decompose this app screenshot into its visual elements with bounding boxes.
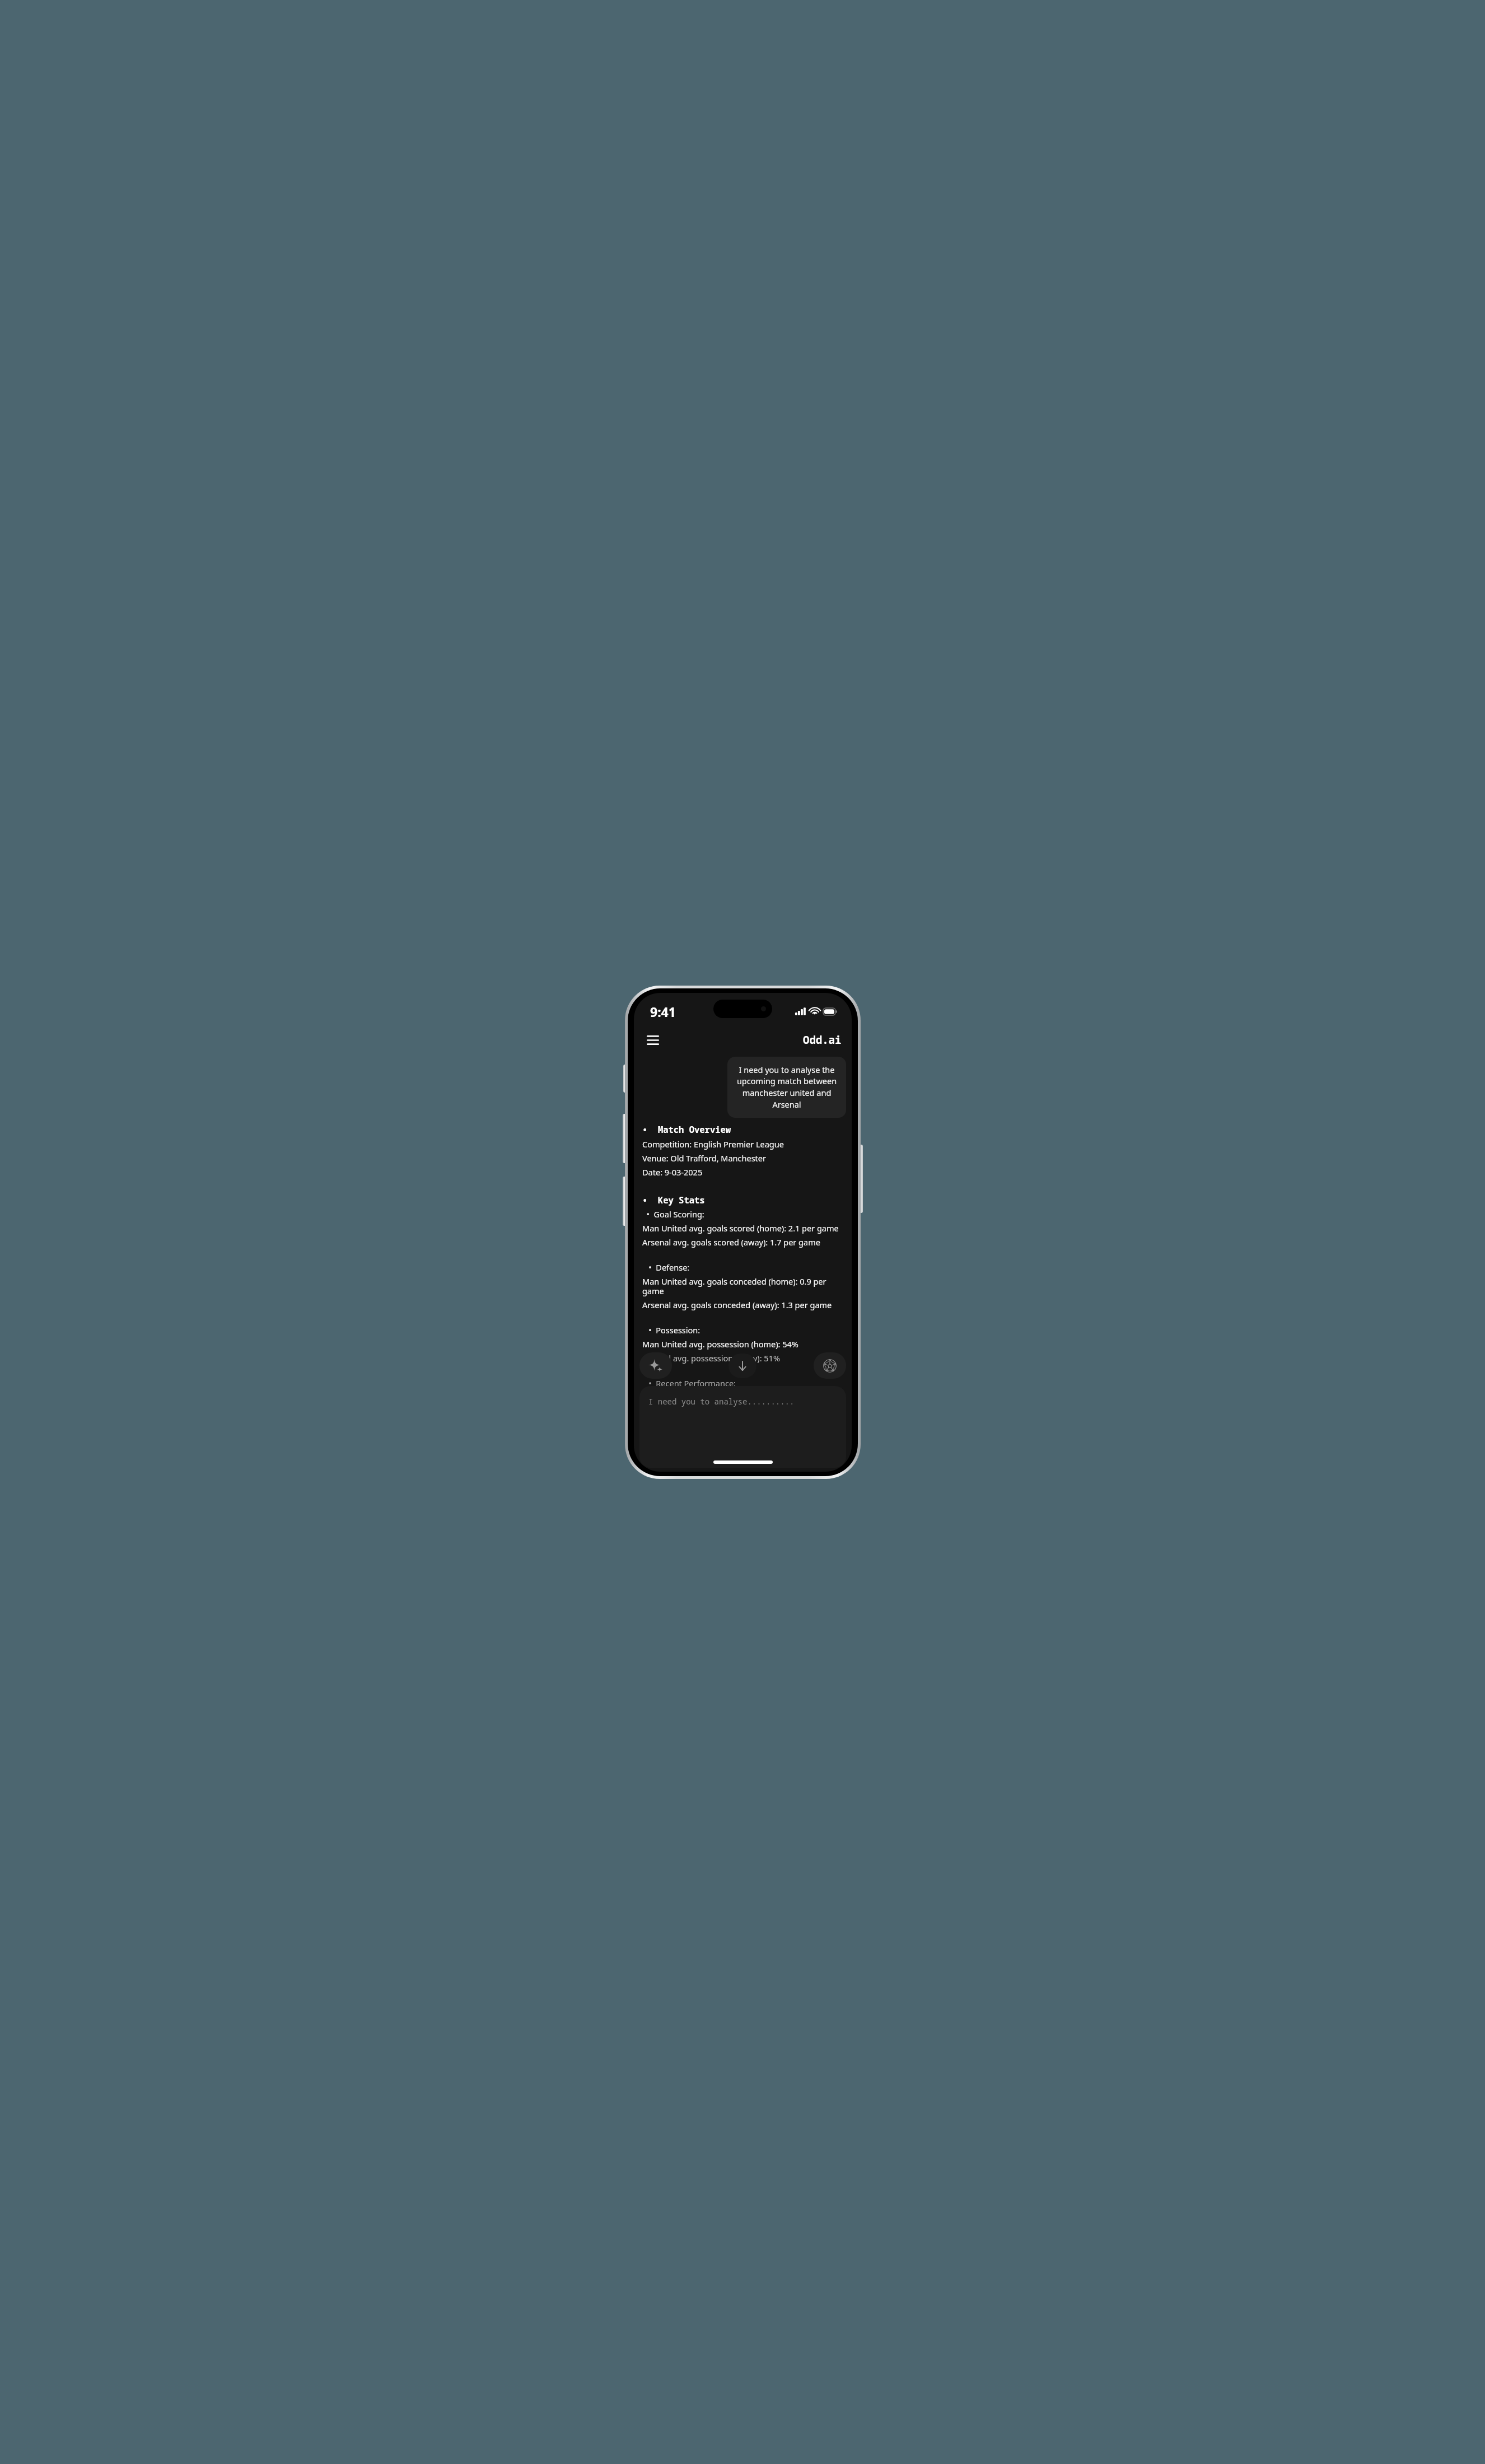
staticText: I need you to analyse.......... [648, 1396, 795, 1407]
staticText: Competition: English Premier League [642, 1138, 784, 1150]
staticText: • Key Stats [642, 1194, 705, 1206]
staticText: Man United has won 4 of their last 5 hom… [642, 1392, 832, 1403]
staticText: • Defense: [642, 1262, 690, 1273]
button[interactable]: I need you to analyse the upcoming match… [727, 1057, 846, 1118]
button[interactable]: Odd.ai [803, 1033, 842, 1047]
button[interactable]: AI suggestions [639, 1352, 672, 1379]
staticText: Date: 9-03-2025 [642, 1166, 703, 1178]
button[interactable]: I need you to analyse.......... [639, 1386, 846, 1468]
staticText: Man United avg. goals conceded (home): 0… [642, 1276, 845, 1296]
staticText: Odd.ai [803, 1033, 842, 1047]
staticText: • Goal Scoring: [642, 1208, 704, 1220]
staticText: I need you to analyse the upcoming match… [735, 1064, 838, 1110]
staticText: Man United avg. possession (home): 54% [642, 1338, 798, 1350]
button[interactable]: Scroll to bottom [729, 1354, 756, 1378]
staticText: • Possession: [642, 1324, 701, 1336]
staticText: • Match Overview [642, 1123, 731, 1135]
staticText: Venue: Old Trafford, Manchester [642, 1152, 766, 1164]
staticText: Arsenal avg. goals conceded (away): 1.3 … [642, 1299, 832, 1310]
staticText: Arsenal avg. goals scored (away): 1.7 pe… [642, 1236, 820, 1248]
staticText: • Recent Performance: [642, 1378, 736, 1389]
staticText: 9:41 [650, 1003, 676, 1020]
button[interactable]: Menu [641, 1028, 665, 1052]
button[interactable]: Football [814, 1352, 846, 1379]
staticText: Chelsea has won 2 of their last 5 away g… [642, 1406, 815, 1417]
staticText: Arsenal avg. possession (away): 51% [642, 1352, 781, 1364]
staticText: Man United avg. goals scored (home): 2.1… [642, 1222, 839, 1234]
